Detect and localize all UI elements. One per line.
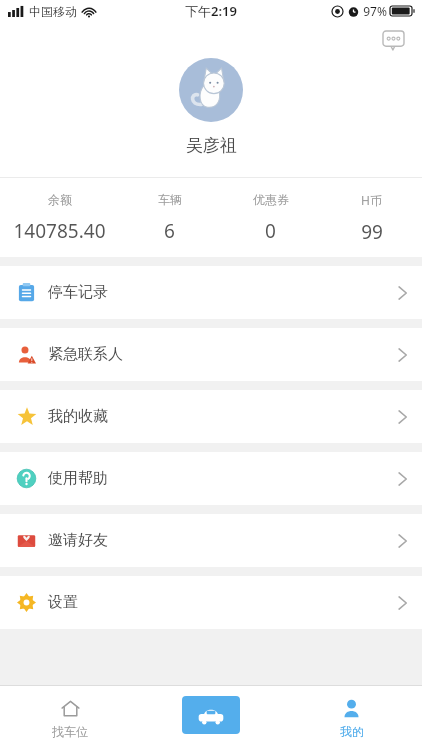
staticText: 紧急联系人 [48,345,123,364]
staticText: 使用帮助 [48,469,108,488]
staticText: 优惠券 [253,192,289,207]
button[interactable]: 使用帮助 [0,452,422,505]
staticText: 我的收藏 [48,407,108,426]
staticText: 余额 [48,192,72,207]
button[interactable]: 车辆 [119,192,220,244]
staticText: 停车记录 [48,283,108,302]
button[interactable]: 停车记录 [0,266,422,319]
staticText: 0 [265,218,276,244]
staticText: 找车位 [52,724,88,739]
staticText: 车辆 [158,192,182,207]
button[interactable]: 设置 [0,576,422,629]
staticText: 设置 [48,593,78,612]
button[interactable] [179,58,243,122]
staticText: 下午2:19 [185,2,237,20]
button[interactable]: 紧急联系人 [0,328,422,381]
button[interactable]: 我的 [281,686,422,750]
button[interactable]: 优惠券 [220,192,321,244]
button[interactable]: H币 [321,192,422,245]
button[interactable]: Messages [376,23,410,57]
staticText: 6 [164,218,175,244]
button[interactable]: 邀请好友 [0,514,422,567]
button[interactable]: 我的收藏 [0,390,422,443]
button[interactable]: 找车位 [0,686,140,750]
staticText: H币 [361,192,382,208]
staticText: 中国移动 [29,4,77,19]
button[interactable]: 余额 [0,192,119,244]
staticText: 我的 [340,724,364,739]
staticText: 97% [363,3,387,19]
staticText: 吴彦祖 [186,135,237,156]
staticText: 140785.40 [13,218,106,244]
staticText: 99 [361,219,383,245]
staticText: 邀请好友 [48,531,108,550]
button[interactable]: Park [140,686,281,750]
